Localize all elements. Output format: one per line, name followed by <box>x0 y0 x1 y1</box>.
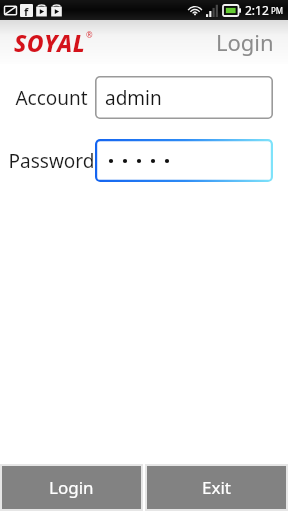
staticText: PM <box>271 5 284 16</box>
staticText: Exit <box>202 476 231 499</box>
button[interactable] <box>95 139 273 182</box>
staticText: admin <box>105 85 162 111</box>
staticText: Password <box>8 148 95 174</box>
button[interactable]: admin <box>95 76 273 119</box>
staticText: SOYAL <box>14 27 86 58</box>
staticText: Login <box>49 476 94 499</box>
staticText: f <box>24 4 29 17</box>
staticText: Login <box>216 27 274 57</box>
staticText: 2:12 <box>245 2 269 18</box>
staticText: Account <box>8 85 95 111</box>
button[interactable]: Login <box>2 466 141 509</box>
button[interactable]: Exit <box>147 466 286 509</box>
staticText: ® <box>86 29 93 40</box>
